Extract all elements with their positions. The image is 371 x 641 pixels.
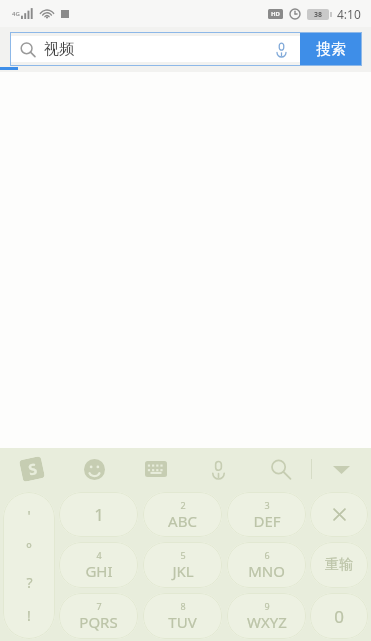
button[interactable]: 重输 bbox=[310, 542, 368, 588]
staticText: 38 bbox=[314, 10, 323, 20]
staticText: WXYZ bbox=[247, 612, 287, 632]
staticText: 4:10 bbox=[337, 6, 361, 22]
staticText: 5 bbox=[180, 549, 186, 561]
button[interactable]: 9 bbox=[227, 593, 306, 639]
button[interactable]: Keyboard layout bbox=[125, 448, 187, 490]
button[interactable]: 2 bbox=[143, 492, 222, 537]
staticText: ' bbox=[27, 506, 31, 525]
staticText: GHI bbox=[85, 561, 113, 581]
staticText: 6 bbox=[264, 549, 270, 561]
staticText: ABC bbox=[168, 511, 197, 531]
staticText: 7 bbox=[96, 600, 102, 612]
staticText: 8 bbox=[180, 600, 186, 612]
staticText: PQRS bbox=[79, 612, 118, 632]
staticText: JKL bbox=[172, 561, 194, 581]
staticText: 视频 bbox=[44, 40, 74, 59]
button[interactable]: 7 bbox=[59, 593, 138, 639]
staticText: ! bbox=[27, 606, 31, 625]
staticText: S bbox=[26, 458, 39, 480]
staticText: 4G bbox=[12, 10, 20, 18]
button[interactable]: Search bbox=[249, 448, 311, 490]
button[interactable]: Emoji bbox=[63, 448, 125, 490]
button[interactable]: 1 bbox=[59, 492, 138, 537]
button[interactable]: 5 bbox=[143, 542, 222, 588]
staticText: TUV bbox=[168, 612, 197, 632]
staticText: 4 bbox=[96, 549, 102, 561]
staticText: 3 bbox=[264, 499, 270, 511]
staticText: 1 bbox=[94, 503, 104, 526]
staticText: 9 bbox=[264, 600, 270, 612]
staticText: HD bbox=[271, 10, 280, 18]
staticText: MNO bbox=[248, 561, 285, 581]
button[interactable]: Hide keyboard bbox=[312, 448, 371, 490]
staticText: ? bbox=[26, 573, 33, 592]
button[interactable]: Sogou input bbox=[0, 448, 63, 490]
staticText: 重输 bbox=[325, 556, 353, 574]
button[interactable]: Delete bbox=[310, 492, 368, 537]
button[interactable]: 0 bbox=[310, 593, 368, 639]
button[interactable]: ' bbox=[3, 492, 55, 639]
staticText: DEF bbox=[253, 511, 281, 531]
staticText: ° bbox=[26, 539, 32, 558]
staticText: 0 bbox=[334, 605, 344, 628]
staticText: 搜索 bbox=[316, 40, 346, 59]
button[interactable]: 6 bbox=[227, 542, 306, 588]
button[interactable]: 4 bbox=[59, 542, 138, 588]
button[interactable]: 8 bbox=[143, 593, 222, 639]
button[interactable]: 搜索 bbox=[300, 33, 362, 65]
button[interactable]: 3 bbox=[227, 492, 306, 537]
button[interactable]: Voice search bbox=[268, 36, 294, 62]
button[interactable]: 视频 bbox=[10, 36, 300, 62]
staticText: 2 bbox=[180, 499, 186, 511]
button[interactable]: Voice input bbox=[187, 448, 249, 490]
